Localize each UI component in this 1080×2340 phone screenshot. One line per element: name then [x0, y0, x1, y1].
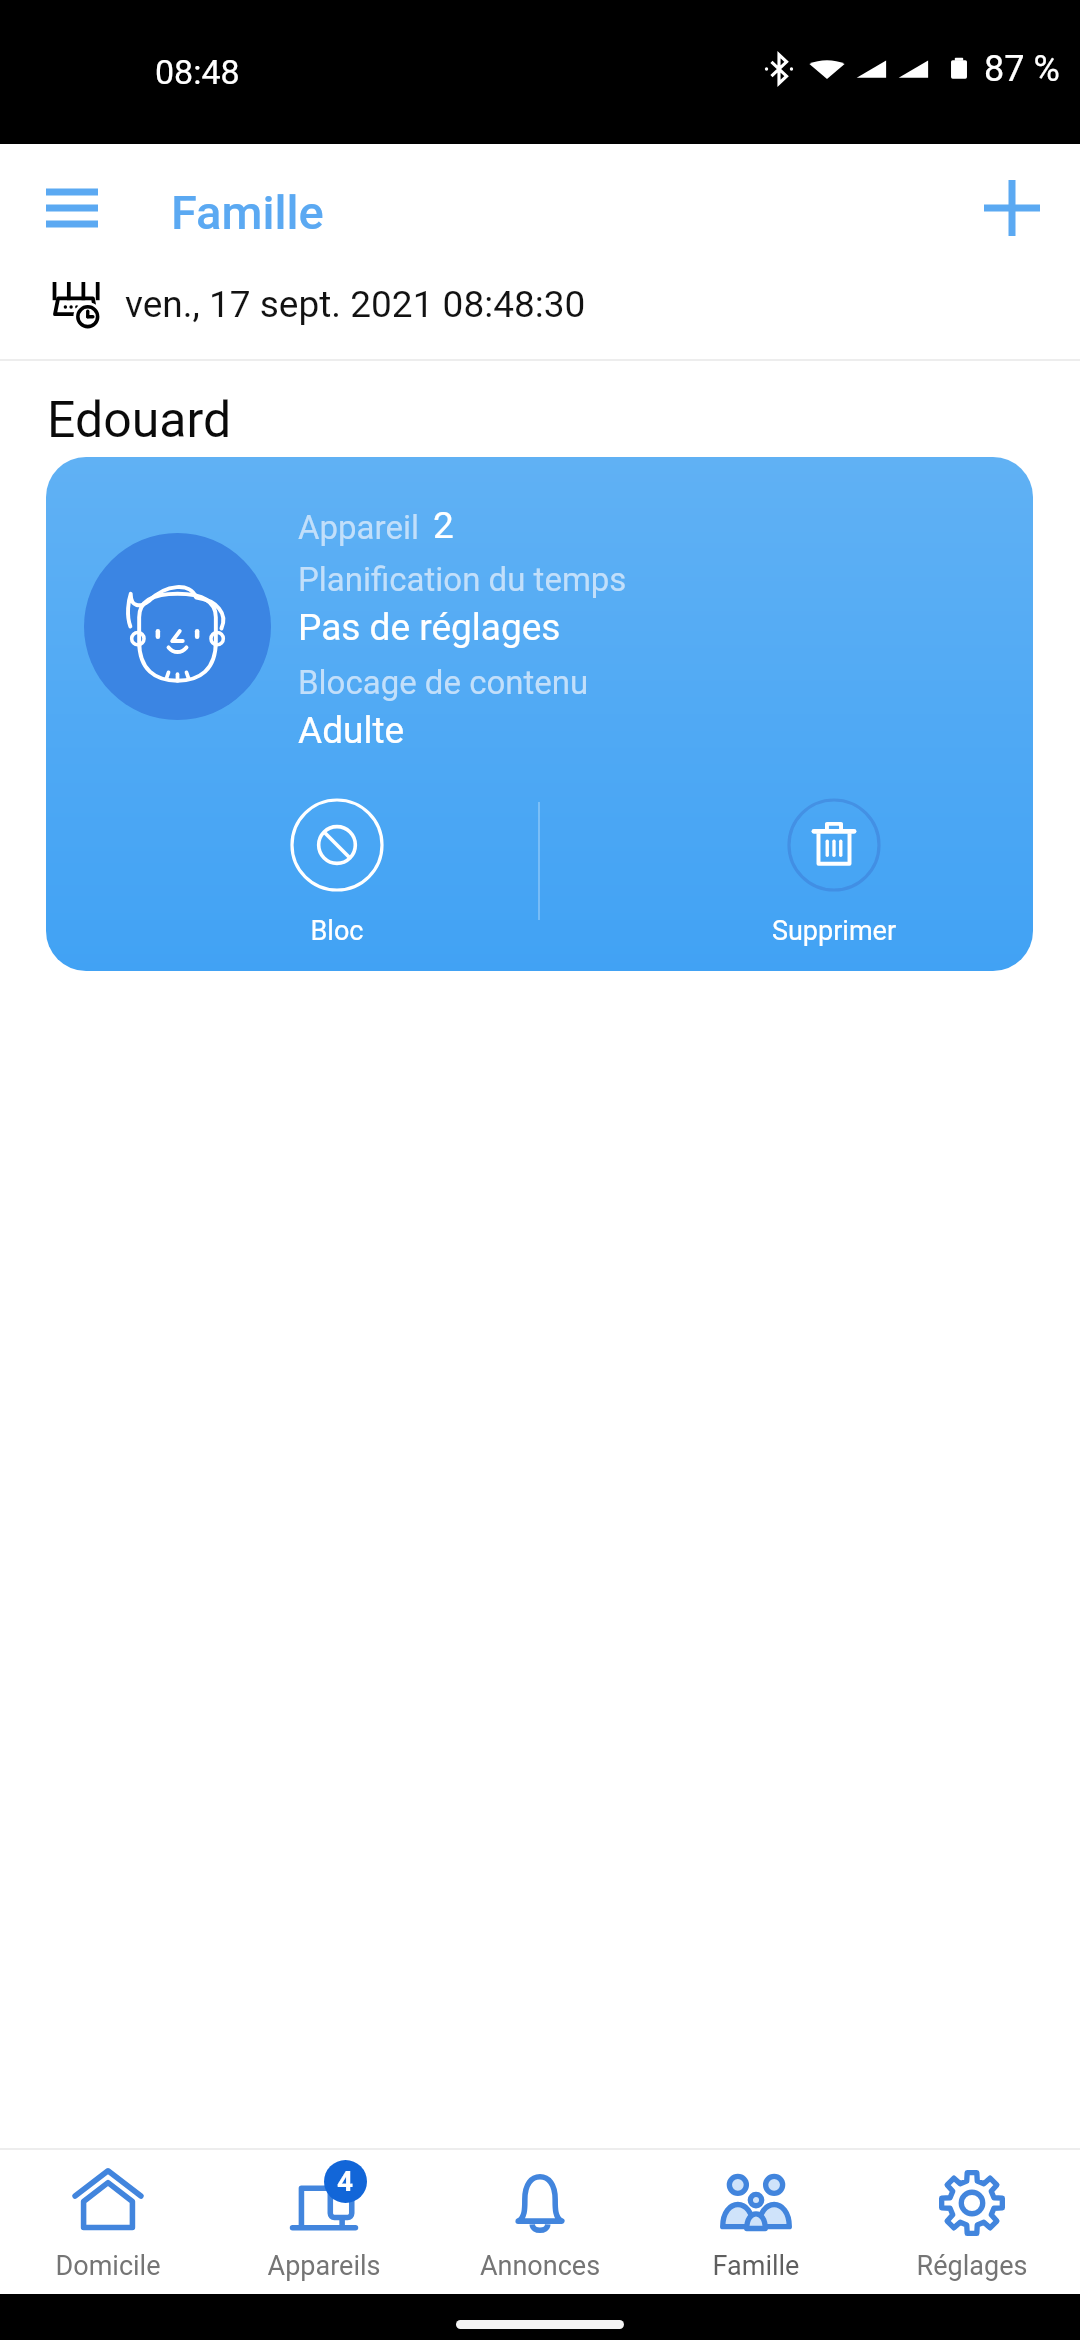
- staticText: Blocage de contenu: [298, 663, 589, 702]
- button[interactable]: Réglages: [864, 2150, 1080, 2296]
- staticText: Supprimer: [742, 915, 926, 947]
- button[interactable]: Annonces: [432, 2150, 648, 2296]
- staticText: Appareils: [216, 2250, 432, 2282]
- staticText: 2: [433, 504, 454, 547]
- staticText: 87 %: [984, 48, 1060, 90]
- button[interactable]: Bloc: [245, 789, 429, 959]
- button[interactable]: Add: [964, 160, 1060, 256]
- button[interactable]: Supprimer: [742, 789, 926, 959]
- staticText: Pas de réglages: [298, 606, 561, 649]
- staticText: Planification du temps: [298, 560, 627, 599]
- button[interactable]: Menu: [22, 160, 122, 256]
- staticText: Bloc: [245, 915, 429, 947]
- staticText: Adulte: [298, 709, 405, 752]
- staticText: Famille: [171, 185, 324, 240]
- staticText: Annonces: [432, 2250, 648, 2282]
- staticText: ven., 17 sept. 2021 08:48:30: [125, 283, 586, 326]
- button[interactable]: Domicile: [0, 2150, 216, 2296]
- button[interactable]: 4: [216, 2150, 432, 2296]
- staticText: 08:48: [155, 52, 240, 92]
- staticText: Edouard: [47, 391, 232, 450]
- staticText: Domicile: [0, 2250, 216, 2282]
- button[interactable]: Appareil: [46, 457, 1033, 971]
- staticText: 4: [337, 2165, 354, 2198]
- staticText: Appareil: [298, 508, 419, 547]
- staticText: Réglages: [864, 2250, 1080, 2282]
- staticText: Famille: [648, 2250, 864, 2282]
- button[interactable]: Famille: [648, 2150, 864, 2296]
